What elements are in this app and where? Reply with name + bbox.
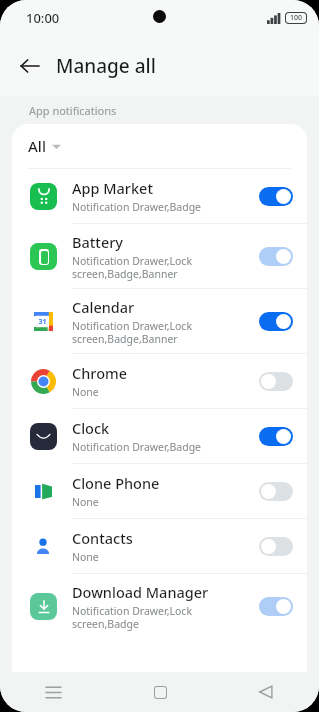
button[interactable]: Toggle notifications (259, 372, 293, 391)
staticText: Notification Drawer,Badge (72, 200, 202, 214)
button[interactable]: Clone Phone (12, 464, 307, 518)
staticText: Battery (72, 232, 123, 252)
button[interactable]: App Market (12, 169, 307, 223)
staticText: Contacts (72, 528, 133, 548)
button[interactable]: Toggle notifications (259, 187, 293, 206)
button[interactable]: Back (244, 672, 288, 712)
staticText: Clock (72, 418, 110, 438)
button[interactable]: Toggle notifications (259, 482, 293, 501)
button[interactable]: Toggle notifications (259, 312, 293, 331)
button[interactable]: Contacts (12, 519, 307, 573)
staticText: Notification Drawer,Badge (72, 440, 202, 454)
button[interactable]: 31 (12, 289, 307, 353)
staticText: Clone Phone (72, 473, 160, 493)
staticText: 31 (38, 317, 47, 327)
staticText: App Market (72, 178, 153, 198)
button[interactable]: Battery (12, 224, 307, 288)
button[interactable]: Back (8, 44, 52, 88)
button[interactable]: Clock (12, 409, 307, 463)
button[interactable]: Toggle notifications (259, 247, 293, 266)
button[interactable]: Home (138, 672, 182, 712)
button[interactable]: Toggle notifications (259, 597, 293, 616)
button[interactable]: Chrome (12, 354, 307, 408)
staticText: Notification Drawer,Lock screen,Badge,Ba… (72, 254, 192, 281)
staticText: All (28, 136, 46, 156)
staticText: None (72, 385, 99, 399)
button[interactable]: Toggle notifications (259, 427, 293, 446)
staticText: Calendar (72, 297, 135, 317)
staticText: 10:00 (26, 9, 60, 27)
staticText: Manage all (56, 53, 156, 79)
staticText: Download Manager (72, 582, 209, 602)
button[interactable]: Recents (31, 672, 75, 712)
staticText: Notification Drawer,Lock screen,Badge,Ba… (72, 319, 192, 346)
staticText: 100 (290, 13, 303, 23)
staticText: None (72, 550, 99, 564)
staticText: App notifications (29, 103, 117, 118)
staticText: Chrome (72, 363, 128, 383)
staticText: Notification Drawer,Lock screen,Badge (72, 604, 192, 631)
staticText: None (72, 495, 99, 509)
button[interactable]: Toggle notifications (259, 537, 293, 556)
button[interactable]: Download Manager (12, 574, 307, 638)
button[interactable]: All (12, 124, 307, 168)
